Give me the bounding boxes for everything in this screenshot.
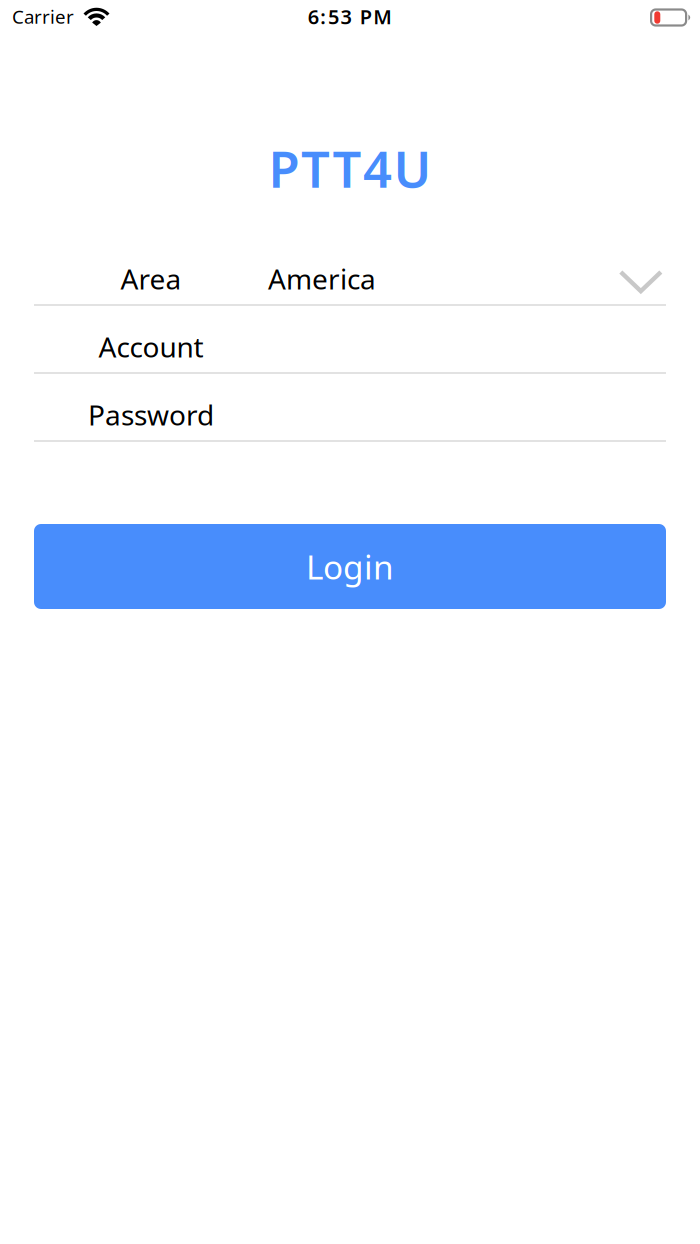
button[interactable]: Account: [34, 306, 666, 374]
staticText: Account: [98, 328, 203, 365]
staticText: America: [268, 260, 376, 297]
staticText: Carrier: [12, 4, 74, 29]
staticText: Area: [120, 260, 181, 297]
staticText: Password: [88, 396, 214, 433]
button[interactable]: Login: [34, 524, 666, 609]
staticText: 6:53 PM: [308, 3, 392, 30]
button[interactable]: Password: [34, 374, 666, 442]
staticText: Login: [306, 544, 394, 589]
staticText: PTT4U: [268, 134, 431, 202]
button[interactable]: Area: [34, 238, 666, 306]
